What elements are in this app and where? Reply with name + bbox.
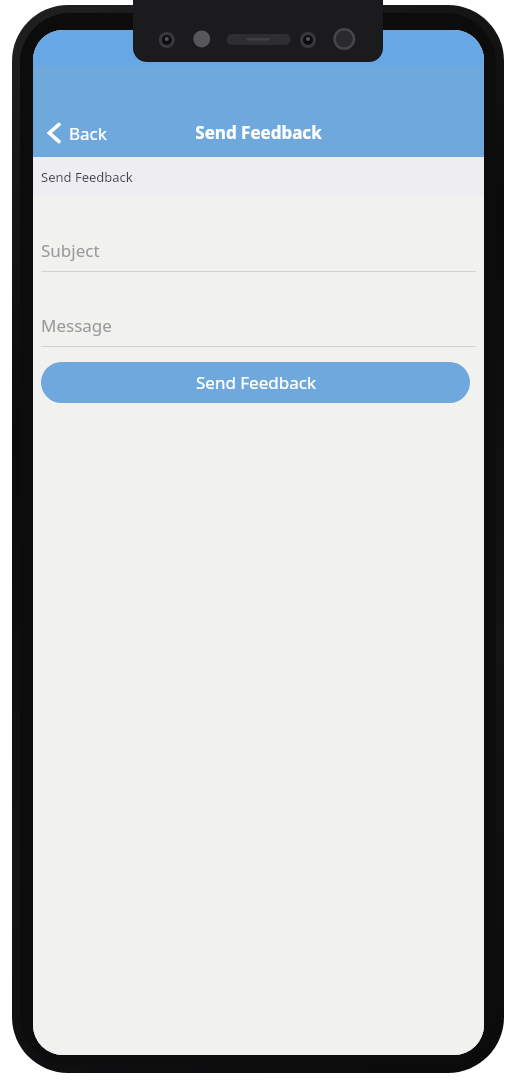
button[interactable]: Send Feedback (41, 362, 470, 403)
button[interactable]: Subject (41, 234, 476, 272)
button[interactable]: Back (39, 115, 119, 151)
staticText: Message (41, 314, 112, 337)
staticText: Subject (41, 239, 100, 262)
staticText: Back (69, 122, 107, 145)
button[interactable]: Message (41, 309, 476, 347)
staticText: Send Feedback (196, 371, 316, 394)
staticText: Send Feedback (41, 168, 133, 186)
staticText: Send Feedback (195, 121, 322, 144)
